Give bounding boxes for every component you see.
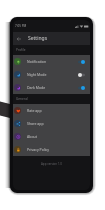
staticText: Night Mode [27, 72, 47, 77]
staticText: App version 1.0 [13, 162, 90, 166]
staticText: Dark Mode [27, 85, 46, 90]
button[interactable]: Night Mode [78, 73, 85, 77]
staticText: About [27, 134, 37, 139]
staticText: Rate app [27, 108, 42, 113]
button[interactable]: Back [13, 32, 25, 45]
button[interactable]: Rate app [13, 104, 90, 117]
button[interactable]: Notification [13, 55, 90, 68]
button[interactable]: Dark Mode [78, 86, 85, 90]
button[interactable]: Dark Mode [13, 81, 90, 94]
button[interactable]: Privacy Policy [13, 143, 90, 156]
staticText: 7:05 PM [15, 24, 27, 28]
staticText: Profile [16, 48, 26, 52]
staticText: Settings [28, 35, 48, 42]
staticText: Share app [27, 121, 44, 126]
button[interactable]: Night Mode [13, 68, 90, 81]
button[interactable]: Notification [78, 60, 85, 64]
staticText: Privacy Policy [27, 147, 50, 152]
staticText: General [16, 97, 28, 101]
staticText: Notification [27, 59, 47, 64]
button[interactable]: About [13, 130, 90, 143]
button[interactable]: Share app [13, 117, 90, 130]
